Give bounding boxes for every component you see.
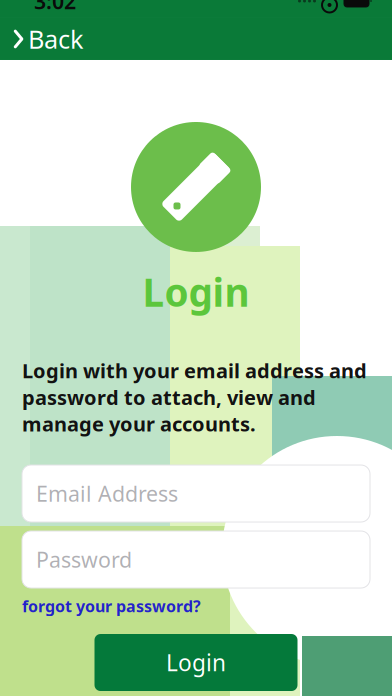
staticText: Password [36,545,132,574]
staticText: Login [142,266,249,317]
staticText: Email Address [36,479,178,508]
button[interactable]: forgot your password? [22,595,370,617]
button[interactable]: Back [0,14,84,64]
staticText: Back [28,22,84,56]
button[interactable]: Email Address [22,465,370,522]
staticText: Login [166,647,226,678]
button[interactable]: Password [22,531,370,588]
staticText: Login with your email address and passwo… [22,357,367,437]
staticText: 3:02 [34,0,76,15]
staticText: forgot your password? [22,595,201,617]
button[interactable]: Login [94,634,297,691]
